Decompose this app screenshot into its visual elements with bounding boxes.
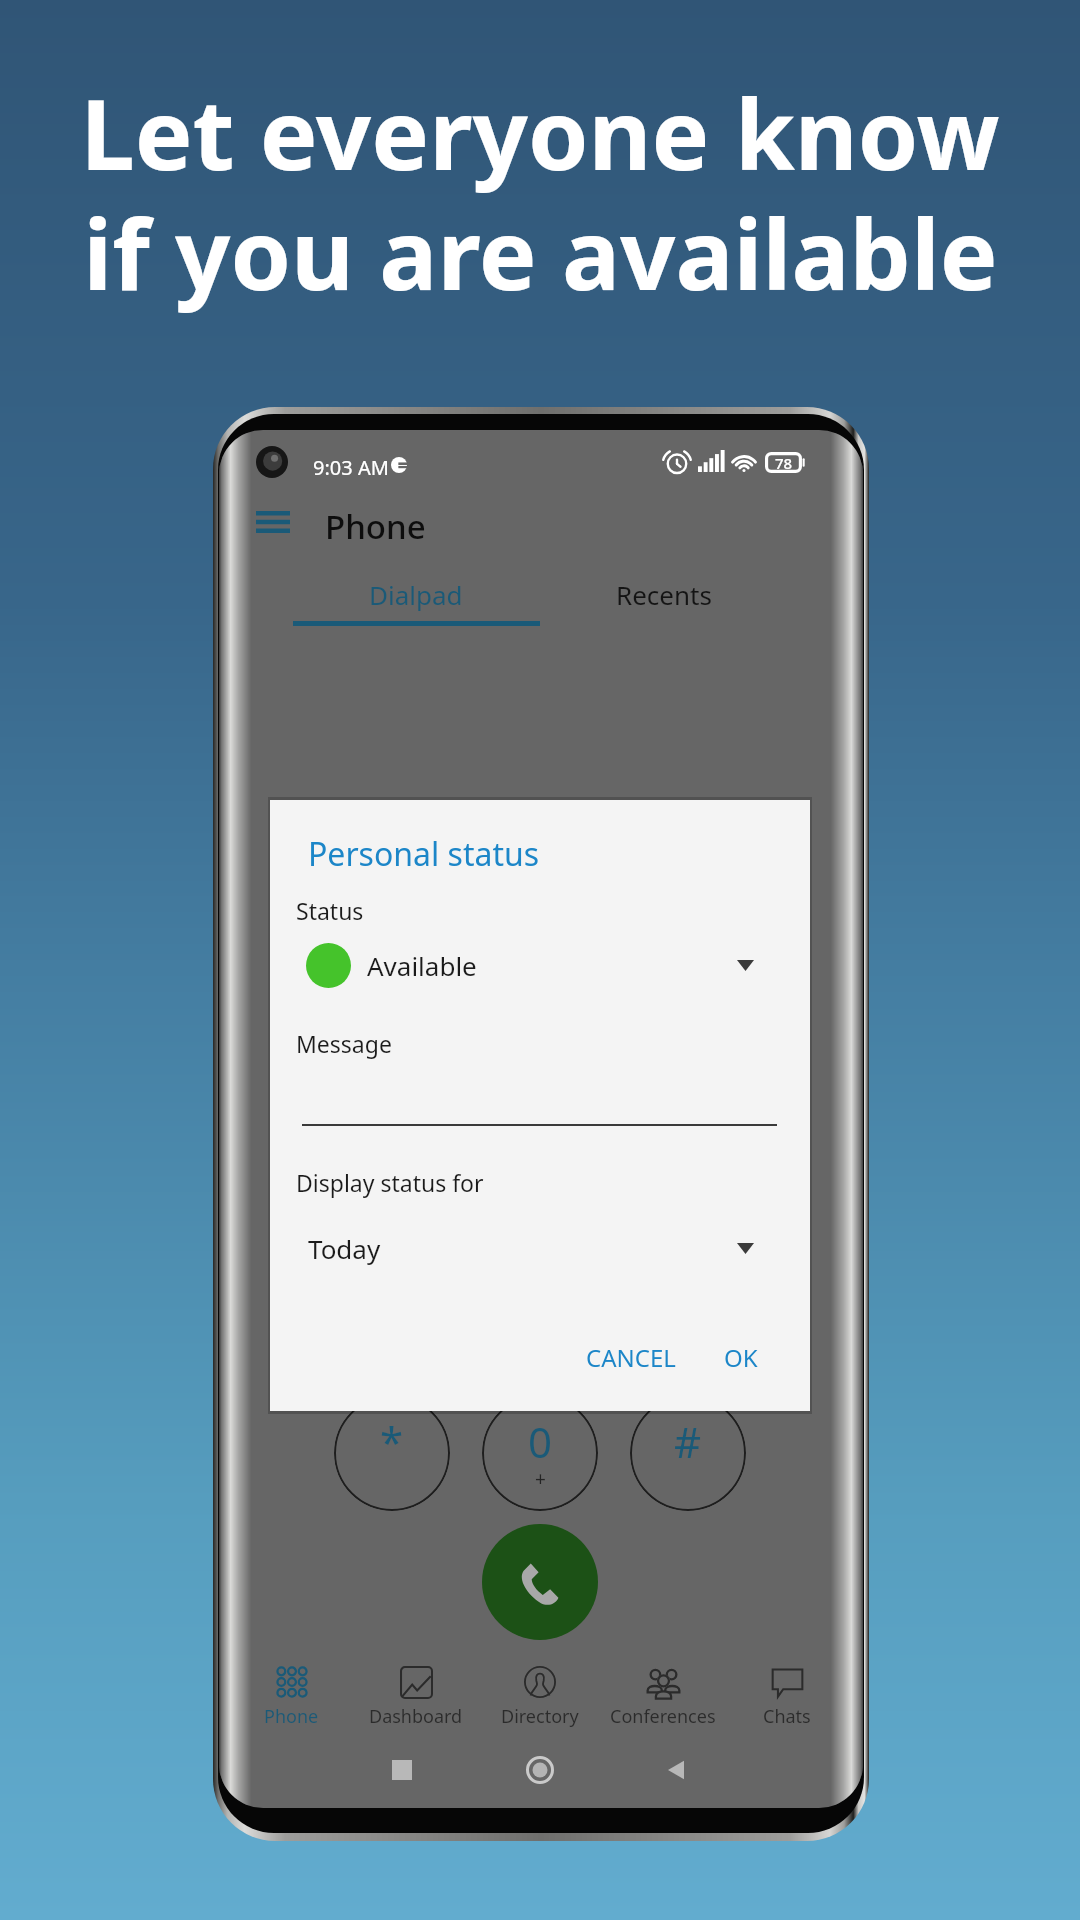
button[interactable]: Phone — [223, 1665, 359, 1737]
button[interactable]: Directory — [472, 1665, 608, 1737]
staticText: CANCEL — [586, 1341, 676, 1374]
button[interactable]: Call — [482, 1524, 598, 1640]
button[interactable]: 0 — [482, 1395, 598, 1511]
staticText: Personal status — [308, 832, 540, 876]
staticText: if you are available — [83, 186, 998, 318]
staticText: Conferences — [610, 1704, 716, 1729]
button[interactable]: Available — [296, 932, 784, 998]
staticText: Dashboard — [369, 1704, 463, 1729]
button[interactable]: # — [630, 1395, 746, 1511]
button[interactable]: Home — [510, 1740, 570, 1800]
button[interactable]: Recent apps — [372, 1740, 432, 1800]
staticText: Message — [296, 1028, 392, 1059]
staticText: Directory — [501, 1704, 579, 1729]
button[interactable]: Back — [646, 1740, 706, 1800]
staticText: Recents — [616, 577, 712, 612]
staticText: Phone — [264, 1704, 319, 1729]
button[interactable]: Conferences — [595, 1665, 731, 1737]
button[interactable]: Dashboard — [348, 1665, 484, 1737]
staticText: Today — [308, 1231, 381, 1266]
button[interactable]: Dialpad — [292, 568, 540, 621]
staticText: OK — [724, 1341, 758, 1374]
staticText: # — [674, 1413, 702, 1470]
button[interactable]: Recents — [540, 568, 788, 621]
staticText: Let everyone know — [80, 66, 1000, 198]
staticText: Status — [296, 895, 364, 926]
button[interactable]: * — [334, 1395, 450, 1511]
button[interactable]: CANCEL — [573, 1327, 689, 1387]
button[interactable]: Chats — [719, 1665, 855, 1737]
staticText: Phone — [325, 504, 426, 549]
staticText: + — [535, 1466, 546, 1492]
staticText: Dialpad — [369, 577, 463, 612]
button[interactable]: Today — [296, 1215, 784, 1281]
staticText: Available — [367, 948, 477, 983]
staticText: 78 — [775, 453, 793, 473]
button[interactable]: Open navigation menu — [244, 498, 302, 546]
staticText: 9:03 AM — [313, 454, 389, 481]
staticText: 0 — [528, 1413, 553, 1470]
button[interactable]: OK — [705, 1327, 777, 1387]
staticText: Display status for — [296, 1167, 484, 1198]
button[interactable]: Message — [296, 1062, 784, 1126]
staticText: * — [380, 1413, 404, 1470]
staticText: Chats — [763, 1704, 811, 1729]
button: Personal status — [270, 800, 810, 1411]
